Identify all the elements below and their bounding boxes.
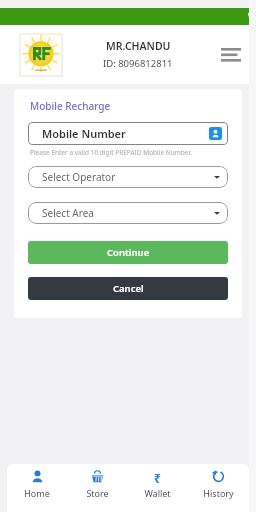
staticText: ID: 8096812811 bbox=[103, 57, 173, 70]
button[interactable]: Select Area bbox=[28, 202, 228, 224]
button[interactable]: Select Operator bbox=[28, 166, 228, 188]
staticText: Select Operator bbox=[42, 170, 214, 184]
staticText: Mobile Recharge bbox=[30, 99, 111, 113]
button[interactable]: History bbox=[188, 470, 249, 512]
staticText: Mobile Number bbox=[42, 126, 209, 141]
staticText: ₹ bbox=[154, 470, 161, 483]
staticText: Home bbox=[24, 487, 50, 499]
staticText: Continue bbox=[107, 246, 150, 259]
staticText: History bbox=[203, 487, 234, 499]
staticText: Wallet bbox=[144, 487, 171, 499]
staticText: MR.CHANDU bbox=[106, 39, 171, 53]
button[interactable]: Store bbox=[67, 470, 127, 512]
staticText: Select Area bbox=[42, 206, 214, 220]
staticText: Please Enter a valid 10 digit PREPAID Mo… bbox=[30, 148, 192, 157]
staticText: Cancel bbox=[113, 282, 144, 295]
staticText: Store bbox=[86, 487, 109, 499]
button[interactable]: Continue bbox=[28, 241, 228, 264]
button[interactable]: Home bbox=[7, 470, 67, 512]
button[interactable]: Pick contact bbox=[209, 127, 222, 140]
button[interactable]: ₹ bbox=[127, 470, 188, 512]
button[interactable]: Menu bbox=[214, 38, 248, 72]
staticText: W bbox=[248, 8, 256, 25]
button[interactable]: Mobile Number bbox=[28, 122, 228, 145]
button[interactable]: Cancel bbox=[28, 277, 228, 300]
